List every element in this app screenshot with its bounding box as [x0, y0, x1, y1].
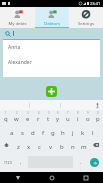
button[interactable]: ?123: [0, 152, 15, 172]
button[interactable]: Backspace: [89, 138, 103, 152]
staticText: n: [71, 143, 75, 151]
staticText: 3: [27, 111, 29, 115]
staticText: z: [17, 143, 20, 151]
button[interactable]: 1: [0, 110, 11, 124]
staticText: Anna: [8, 44, 21, 51]
staticText: o: [86, 115, 90, 123]
staticText: 0: [97, 111, 99, 115]
button[interactable]: Debtors: [35, 7, 69, 28]
button[interactable]: h: [58, 124, 68, 138]
button[interactable]: 5: [43, 110, 53, 124]
staticText: 6: [57, 111, 59, 115]
button[interactable]: Home: [35, 172, 69, 183]
staticText: 23:41: [90, 1, 101, 6]
button[interactable]: l: [88, 124, 98, 138]
staticText: Alexander: [8, 59, 32, 66]
staticText: y: [56, 115, 60, 123]
button[interactable]: z: [13, 138, 23, 152]
button[interactable]: Alexander: [3, 55, 100, 70]
button[interactable]: Voice input: [91, 100, 103, 110]
button[interactable]: n: [67, 138, 78, 152]
button[interactable]: 4: [33, 110, 43, 124]
button[interactable]: j: [68, 124, 78, 138]
button[interactable]: x: [23, 138, 34, 152]
staticText: i: [77, 115, 79, 123]
staticText: d: [31, 129, 35, 137]
staticText: k: [81, 129, 85, 137]
staticText: Settings: [69, 21, 103, 27]
button[interactable]: Enter: [90, 158, 99, 167]
staticText: u: [66, 115, 70, 123]
staticText: 7: [67, 111, 69, 115]
button[interactable]: Search: [4, 30, 11, 37]
staticText: 8: [77, 111, 79, 115]
staticText: ?123: [4, 160, 12, 165]
button[interactable]: v: [45, 138, 56, 152]
staticText: c: [38, 143, 41, 151]
staticText: h: [61, 129, 65, 137]
staticText: x: [27, 143, 31, 151]
staticText: 9: [87, 111, 89, 115]
button[interactable]: 7: [63, 110, 73, 124]
button[interactable]: Recents: [69, 172, 103, 183]
button[interactable]: Back: [0, 172, 35, 183]
staticText: b: [60, 143, 64, 151]
button[interactable]: b: [56, 138, 67, 152]
staticText: w: [14, 115, 19, 123]
button[interactable]: 3: [22, 110, 33, 124]
button[interactable]: .: [75, 152, 86, 172]
button[interactable]: f: [38, 124, 48, 138]
staticText: 4: [38, 111, 40, 115]
staticText: .: [80, 159, 82, 166]
staticText: 1: [5, 111, 7, 115]
staticText: Debtors: [35, 21, 69, 27]
staticText: f: [42, 129, 45, 137]
staticText: t: [47, 115, 50, 123]
staticText: m: [81, 143, 87, 151]
button[interactable]: k: [78, 124, 88, 138]
staticText: 2: [16, 111, 18, 115]
button[interactable]: My debts: [0, 7, 35, 28]
button[interactable]: g: [48, 124, 58, 138]
staticText: My debts: [0, 21, 35, 27]
button[interactable]: 9: [83, 110, 93, 124]
button[interactable]: Anna: [3, 40, 100, 55]
button[interactable]: 2: [11, 110, 22, 124]
staticText: l: [92, 129, 94, 137]
staticText: j: [72, 129, 74, 137]
staticText: q: [4, 115, 8, 123]
button[interactable]: a: [6, 124, 17, 138]
button[interactable]: 6: [53, 110, 63, 124]
button[interactable]: c: [34, 138, 45, 152]
staticText: s: [21, 129, 24, 137]
button[interactable]: d: [28, 124, 38, 138]
button[interactable]: Shift: [0, 138, 13, 152]
staticText: a: [10, 129, 14, 137]
button[interactable]: 0: [93, 110, 103, 124]
staticText: p: [96, 115, 100, 123]
button[interactable]: s: [17, 124, 28, 138]
button[interactable]: 8: [73, 110, 83, 124]
button[interactable]: ,: [15, 152, 26, 172]
staticText: 5: [48, 111, 50, 115]
staticText: v: [49, 143, 53, 151]
staticText: e: [26, 115, 30, 123]
staticText: ,: [20, 159, 22, 166]
button[interactable]: Settings: [69, 7, 103, 28]
button[interactable]: Add: [46, 86, 57, 97]
staticText: r: [37, 115, 40, 123]
staticText: g: [51, 129, 55, 137]
button[interactable]: m: [78, 138, 89, 152]
